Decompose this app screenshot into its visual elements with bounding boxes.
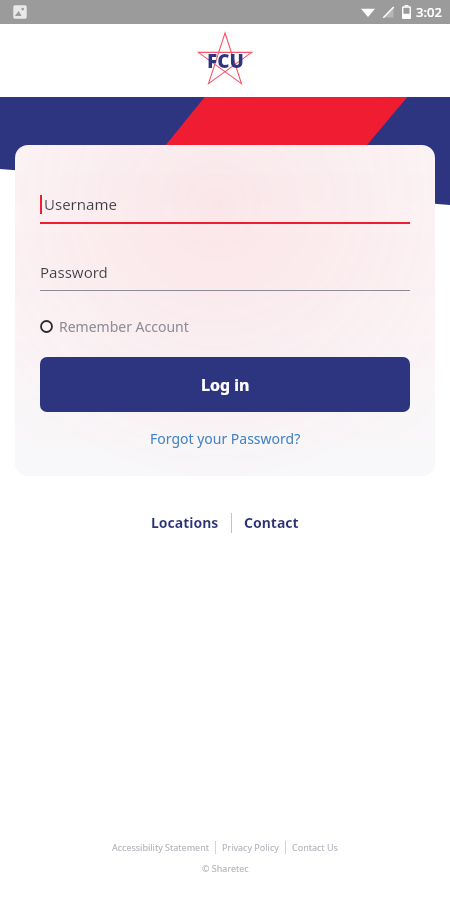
- button[interactable]: Locations: [139, 506, 231, 539]
- staticText: Forgot your Password?: [150, 429, 301, 448]
- button[interactable]: Contact: [232, 506, 311, 539]
- staticText: 3:02: [416, 3, 442, 21]
- button[interactable]: Contact Us: [286, 837, 344, 857]
- button[interactable]: Forgot your Password?: [142, 423, 309, 454]
- staticText: Accessibility Statement: [112, 841, 209, 853]
- staticText: © Sharetec: [202, 862, 249, 874]
- staticText: Log in: [201, 374, 250, 396]
- staticText: Contact Us: [292, 841, 338, 853]
- staticText: Username: [44, 194, 117, 214]
- button[interactable]: Password: [40, 254, 410, 290]
- staticText: Contact: [244, 513, 299, 532]
- button[interactable]: Log in: [40, 357, 410, 412]
- button[interactable]: Remember Account: [40, 313, 189, 340]
- staticText: FCU: [207, 48, 244, 74]
- staticText: Privacy Policy: [222, 841, 279, 853]
- button[interactable]: Username: [40, 186, 410, 222]
- button[interactable]: Accessibility Statement: [106, 837, 215, 857]
- staticText: Password: [40, 262, 108, 282]
- button[interactable]: Privacy Policy: [216, 837, 285, 857]
- staticText: Remember Account: [59, 317, 189, 336]
- staticText: Locations: [151, 513, 219, 532]
